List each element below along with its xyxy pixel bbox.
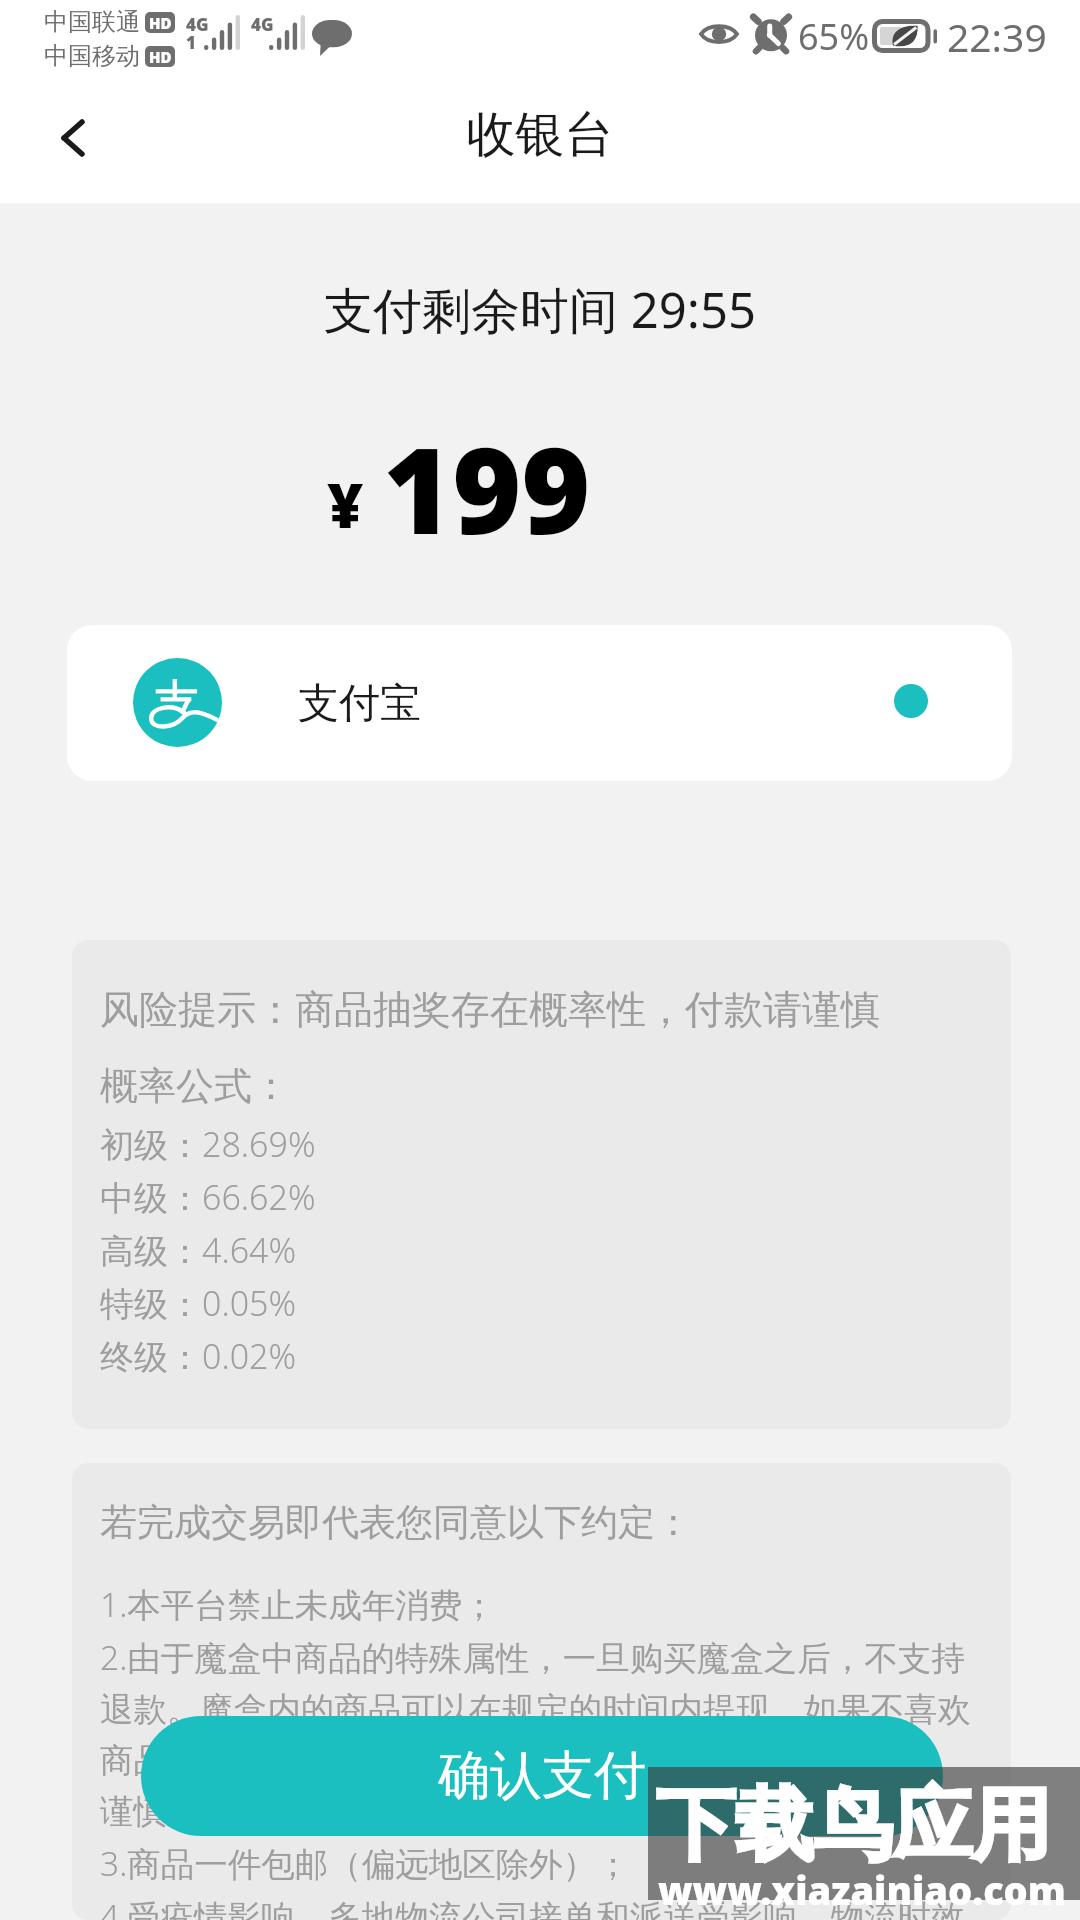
staticText: 确认支付	[438, 1743, 646, 1809]
staticText: 中国联通	[44, 7, 140, 37]
staticText: HD	[149, 13, 172, 33]
staticText: 22:39	[947, 10, 1047, 63]
button[interactable]: 确认支付	[141, 1716, 943, 1836]
staticText: 中国移动	[44, 41, 140, 71]
staticText: ¥	[327, 462, 364, 546]
staticText: 1.本平台禁止未成年消费； 2.由于魔盒中商品的特殊属性，一旦购买魔盒之后，不支…	[100, 1581, 986, 1920]
staticText: 收银台	[0, 104, 1080, 166]
staticText: 支付宝	[298, 678, 421, 730]
staticText: 199	[383, 408, 591, 569]
staticText: www.xiazainiao.com	[658, 1864, 1066, 1916]
staticText: 若完成交易即代表您同意以下约定：	[100, 1499, 692, 1546]
button[interactable]: Back	[25, 90, 121, 186]
staticText: 初级：28.69% 中级：66.62% 高级：4.64% 特级：0.05% 终级…	[100, 1121, 316, 1380]
staticText: HD	[149, 47, 172, 67]
button[interactable]: 支付宝	[67, 625, 1012, 781]
staticText: 1	[186, 31, 196, 54]
staticText: 4G	[251, 13, 274, 36]
staticText: 下载鸟应用	[656, 1776, 1051, 1876]
staticText: 4G	[186, 13, 209, 36]
staticText: 风险提示：商品抽奖存在概率性，付款请谨慎	[100, 985, 880, 1034]
staticText: 65%	[798, 12, 870, 61]
staticText: 概率公式：	[100, 1062, 290, 1110]
staticText: 支付剩余时间 29:55	[0, 276, 1080, 343]
